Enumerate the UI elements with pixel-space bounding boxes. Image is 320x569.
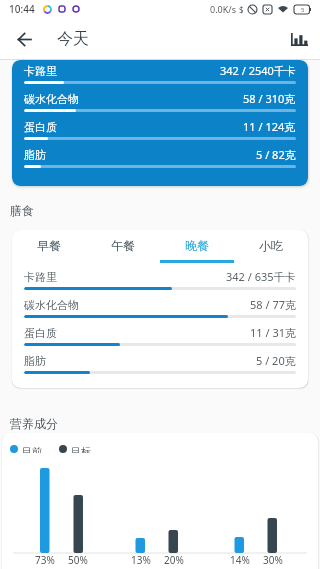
staticText: 73% bbox=[35, 553, 55, 567]
staticText: 蛋白质 bbox=[24, 326, 57, 340]
staticText: 14% bbox=[230, 553, 250, 567]
staticText: $ bbox=[239, 4, 244, 15]
staticText: 30% bbox=[263, 553, 283, 567]
button[interactable] bbox=[286, 26, 312, 52]
staticText: 58 / 310克 bbox=[243, 91, 296, 106]
staticText: 342 / 635千卡 bbox=[226, 269, 296, 284]
staticText: 11 / 31克 bbox=[250, 325, 296, 340]
staticText: 5 bbox=[301, 6, 305, 14]
staticText: 卡路里 bbox=[24, 64, 57, 78]
staticText: 58 / 77克 bbox=[250, 297, 296, 312]
staticText: 50% bbox=[68, 553, 88, 567]
staticText: 脂肪 bbox=[24, 148, 46, 162]
staticText: 早餐 bbox=[37, 238, 61, 253]
staticText: 目前 bbox=[22, 445, 42, 453]
button[interactable]: 晚餐 bbox=[160, 230, 234, 263]
button[interactable]: 小吃 bbox=[234, 230, 308, 263]
button[interactable]: 午餐 bbox=[86, 230, 160, 263]
staticText: 11 / 124克 bbox=[243, 119, 296, 134]
staticText: 卡路里 bbox=[24, 270, 57, 284]
button[interactable]: 早餐 bbox=[12, 230, 86, 263]
staticText: 营养成分 bbox=[10, 416, 58, 431]
staticText: 342 / 2540千卡 bbox=[220, 63, 296, 78]
staticText: 膳食 bbox=[10, 203, 34, 218]
staticText: 10:44 bbox=[9, 2, 35, 16]
staticText: 5 / 20克 bbox=[256, 353, 296, 368]
staticText: 脂肪 bbox=[24, 354, 46, 368]
staticText: 午餐 bbox=[111, 238, 135, 253]
staticText: 5 / 82克 bbox=[256, 147, 296, 162]
staticText: 今天 bbox=[57, 29, 89, 49]
staticText: 13% bbox=[131, 553, 151, 567]
staticText: 晚餐 bbox=[185, 238, 209, 253]
staticText: 20% bbox=[164, 553, 184, 567]
staticText: 碳水化合物 bbox=[24, 298, 79, 312]
staticText: 0.0K/s bbox=[210, 3, 236, 15]
staticText: 碳水化合物 bbox=[24, 92, 79, 106]
button[interactable] bbox=[10, 25, 38, 53]
staticText: 蛋白质 bbox=[24, 120, 57, 134]
staticText: 小吃 bbox=[259, 238, 283, 253]
staticText: 目标 bbox=[71, 445, 91, 453]
